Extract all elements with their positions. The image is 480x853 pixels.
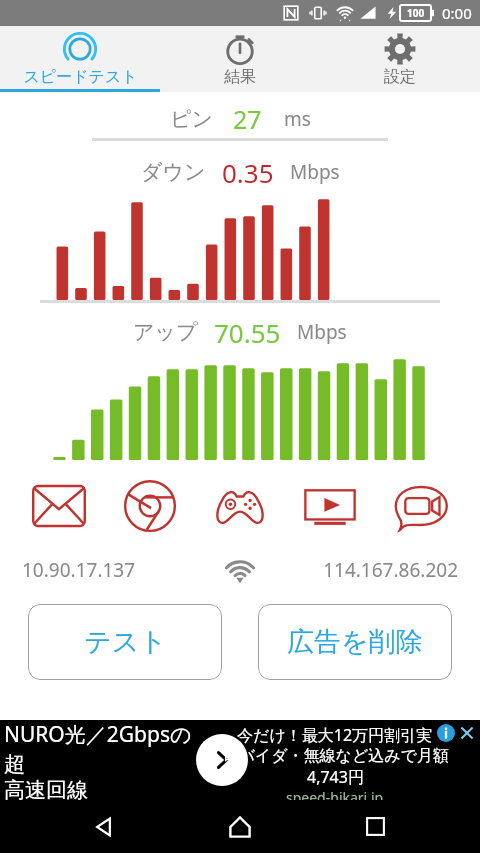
staticText: 結果 <box>224 67 256 87</box>
staticText: Mbps <box>290 159 340 185</box>
button[interactable]: Browser <box>119 476 181 536</box>
staticText: 27 <box>233 102 262 136</box>
button[interactable]: 結果 <box>160 26 320 92</box>
button[interactable]: Back <box>75 800 135 853</box>
button[interactable]: テスト <box>28 604 222 680</box>
staticText: ピン <box>170 106 213 132</box>
button[interactable]: Close ad <box>456 722 478 744</box>
button[interactable]: 設定 <box>320 26 480 92</box>
staticText: 10.90.17.137 <box>22 557 223 583</box>
button[interactable]: Video call <box>390 476 452 536</box>
staticText: 114.167.86.202 <box>257 557 458 583</box>
staticText: NURO光／2Gbpsの超 <box>4 720 194 777</box>
staticText: アップ <box>133 319 198 345</box>
button[interactable]: Email <box>28 476 90 536</box>
staticText: 0:00 <box>442 3 472 23</box>
button[interactable]: NURO光／2Gbpsの超 <box>0 720 480 800</box>
button[interactable]: Gaming <box>209 476 271 536</box>
staticText: 設定 <box>384 67 416 87</box>
staticText: 今だけ！最大12万円割引実 <box>237 724 433 746</box>
staticText: 広告を削除 <box>287 625 423 659</box>
button[interactable]: Recent apps <box>345 800 405 853</box>
staticText: speed-hikari.jp <box>286 788 384 800</box>
staticText: 100 <box>407 6 425 20</box>
staticText: ms <box>284 106 311 132</box>
staticText: 4,743円 <box>307 766 364 788</box>
staticText: 高速回線 <box>4 777 88 800</box>
other: Open ad <box>196 734 248 786</box>
staticText: ダウン <box>141 159 206 185</box>
staticText: ロバイダ・無線など込みで月額 <box>222 746 449 766</box>
button[interactable]: Home <box>210 800 270 853</box>
staticText: スピードテスト <box>23 67 138 87</box>
staticText: 0.35 <box>222 155 274 189</box>
button[interactable]: 広告を削除 <box>258 604 452 680</box>
button[interactable]: Video streaming <box>299 476 361 536</box>
button[interactable]: スピードテスト <box>0 26 160 92</box>
staticText: テスト <box>84 625 167 659</box>
staticText: Mbps <box>297 319 347 345</box>
button[interactable]: Ad info <box>436 723 456 743</box>
staticText: 70.55 <box>214 315 281 349</box>
